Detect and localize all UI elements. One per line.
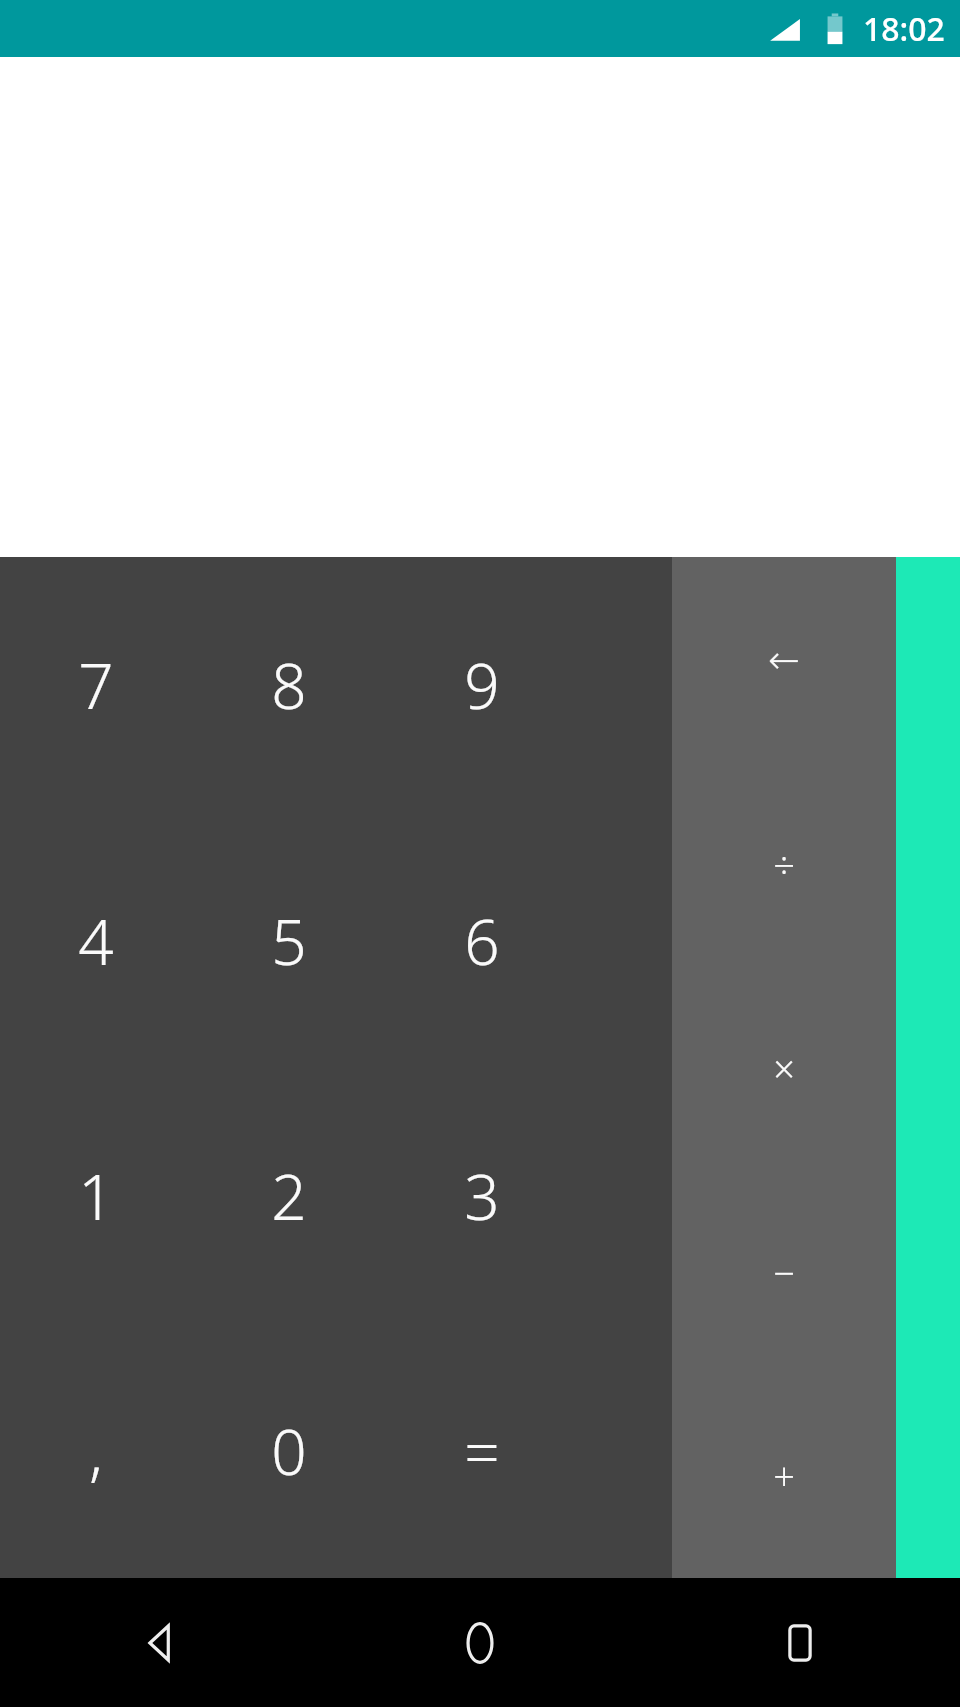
- button[interactable]: =: [385, 1323, 578, 1578]
- button[interactable]: Divide: [672, 762, 896, 966]
- staticText: ,: [89, 1409, 103, 1493]
- staticText: ÷: [773, 838, 795, 890]
- staticText: ←: [768, 638, 800, 682]
- button[interactable]: Home: [320, 1578, 640, 1707]
- staticText: 4: [78, 899, 114, 983]
- button[interactable]: 6: [385, 813, 578, 1068]
- staticText: 9: [464, 643, 500, 727]
- staticText: 0: [271, 1409, 307, 1493]
- staticText: 6: [464, 899, 500, 983]
- button[interactable]: Multiply: [672, 966, 896, 1170]
- staticText: 1: [78, 1154, 114, 1238]
- button[interactable]: 2: [192, 1068, 385, 1323]
- staticText: 7: [78, 643, 114, 727]
- button[interactable]: 9: [385, 557, 578, 813]
- staticText: =: [464, 1409, 500, 1493]
- staticText: ×: [773, 1042, 795, 1094]
- staticText: 2: [271, 1154, 307, 1238]
- button[interactable]: Back: [0, 1578, 320, 1707]
- button[interactable]: Subtract: [672, 1170, 896, 1374]
- staticText: 8: [271, 643, 307, 727]
- staticText: 3: [464, 1154, 500, 1238]
- button[interactable]: 1: [0, 1068, 192, 1323]
- staticText: 18:02: [863, 7, 945, 51]
- button[interactable]: ,: [0, 1323, 192, 1578]
- button[interactable]: 8: [192, 557, 385, 813]
- button[interactable]: Delete: [672, 557, 896, 762]
- button[interactable]: 0: [192, 1323, 385, 1578]
- button[interactable]: 3: [385, 1068, 578, 1323]
- button[interactable]: 4: [0, 813, 192, 1068]
- button[interactable]: Recent apps: [640, 1578, 960, 1707]
- button[interactable]: 5: [192, 813, 385, 1068]
- button[interactable]: Add: [672, 1374, 896, 1578]
- staticText: −: [773, 1246, 795, 1298]
- staticText: 5: [271, 899, 307, 983]
- button[interactable]: 7: [0, 557, 192, 813]
- staticText: +: [773, 1450, 795, 1502]
